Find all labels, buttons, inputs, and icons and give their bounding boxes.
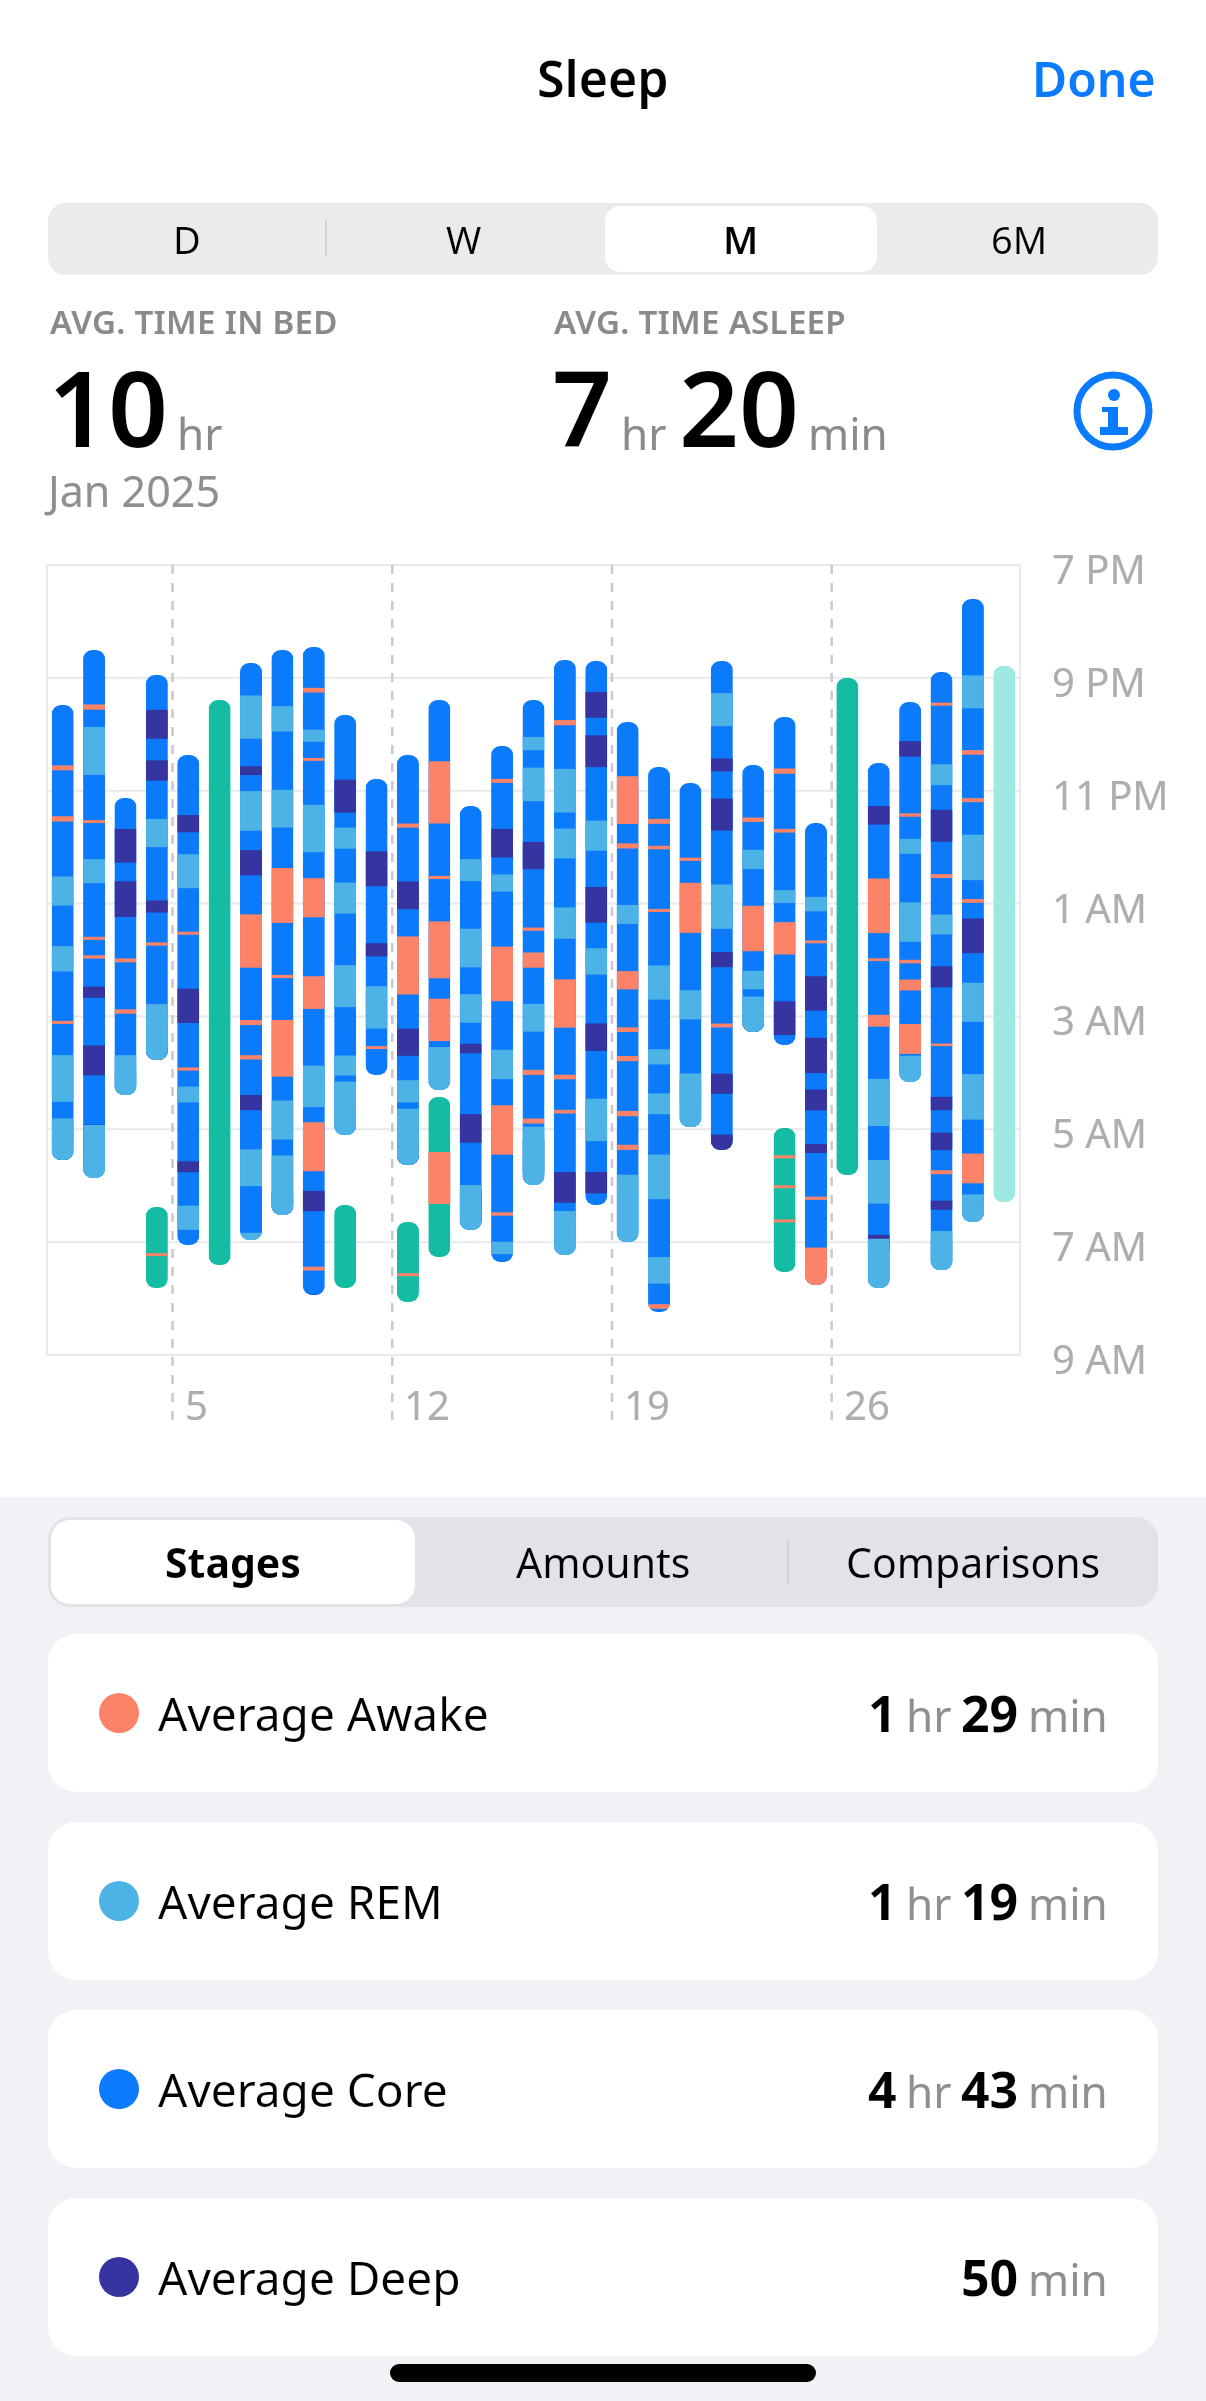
staticText: 19 — [961, 1867, 1019, 1935]
staticText: 10 — [48, 335, 169, 478]
staticText: 5 AM — [1052, 1105, 1148, 1159]
staticText: min — [1028, 2061, 1108, 2121]
staticText: 6M — [991, 213, 1048, 265]
staticText: M — [723, 213, 759, 265]
staticText: 11 PM — [1052, 767, 1169, 821]
button[interactable]: Average Awake — [48, 1634, 1158, 1792]
staticText: hr — [906, 2061, 952, 2121]
staticText: 43 — [961, 2055, 1019, 2123]
button[interactable]: Average Deep — [48, 2198, 1158, 2356]
staticText: W — [446, 213, 482, 265]
staticText: Amounts — [516, 1534, 691, 1590]
staticText: 1 — [868, 1867, 897, 1935]
button[interactable]: W — [328, 206, 599, 272]
staticText: min — [1028, 1685, 1108, 1745]
staticText: 12 — [404, 1377, 450, 1431]
staticText: 7 AM — [1052, 1218, 1148, 1272]
button[interactable]: Stages — [51, 1520, 415, 1604]
staticText: 7 — [552, 335, 613, 478]
staticText: 5 — [185, 1377, 208, 1431]
button[interactable]: M — [605, 206, 877, 272]
staticText: Average Deep — [158, 2246, 461, 2309]
staticText: 50 — [961, 2243, 1019, 2311]
staticText: hr — [906, 1685, 952, 1745]
button[interactable]: Average REM — [48, 1822, 1158, 1980]
button[interactable] — [1073, 371, 1153, 451]
staticText: min — [1028, 2249, 1108, 2309]
staticText: 19 — [624, 1377, 670, 1431]
button[interactable]: Average Core — [48, 2010, 1158, 2168]
button[interactable]: Amounts — [421, 1520, 785, 1604]
staticText: Average REM — [158, 1870, 443, 1933]
staticText: 9 PM — [1052, 654, 1146, 708]
staticText: 3 AM — [1052, 992, 1148, 1046]
staticText: 26 — [844, 1377, 890, 1431]
staticText: 29 — [961, 1679, 1019, 1747]
button[interactable]: Comparisons — [791, 1520, 1155, 1604]
staticText: hr — [177, 403, 223, 463]
staticText: 4 — [868, 2055, 897, 2123]
staticText: hr — [906, 1873, 952, 1933]
button[interactable]: 6M — [883, 206, 1155, 272]
staticText: Average Awake — [158, 1682, 489, 1745]
staticText: 1 — [868, 1679, 897, 1747]
staticText: AVG. TIME ASLEEP — [554, 299, 846, 344]
staticText: Sleep — [537, 44, 669, 112]
staticText: Average Core — [158, 2058, 448, 2121]
staticText: hr — [621, 403, 667, 463]
button[interactable]: D — [51, 206, 322, 272]
staticText: min — [1028, 1873, 1108, 1933]
staticText: 20 — [679, 335, 800, 478]
staticText: Stages — [165, 1534, 301, 1590]
staticText: D — [173, 213, 201, 265]
staticText: Jan 2025 — [48, 461, 220, 520]
button[interactable]: Done — [1032, 46, 1156, 111]
staticText: 1 AM — [1052, 880, 1148, 934]
staticText: min — [808, 403, 888, 463]
staticText: 7 PM — [1052, 541, 1146, 595]
staticText: 9 AM — [1052, 1331, 1148, 1385]
staticText: AVG. TIME IN BED — [50, 299, 338, 344]
staticText: Done — [1032, 46, 1156, 111]
staticText: Comparisons — [846, 1534, 1101, 1590]
